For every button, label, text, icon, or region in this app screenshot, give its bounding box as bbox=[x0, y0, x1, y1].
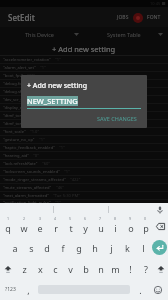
button[interactable]: Symbols bbox=[153, 258, 168, 279]
staticText: "23" bbox=[27, 73, 36, 79]
staticText: n bbox=[98, 263, 104, 275]
button[interactable]: a bbox=[7, 237, 23, 258]
button[interactable]: h bbox=[87, 237, 103, 258]
button[interactable]: 2 bbox=[16, 216, 32, 237]
staticText: m bbox=[111, 263, 120, 275]
staticText: "alarm_alert_set" bbox=[3, 65, 36, 71]
button[interactable]: n bbox=[93, 258, 108, 279]
button[interactable]: This Device bbox=[0, 27, 84, 42]
button[interactable]: j bbox=[103, 237, 119, 258]
staticText: "1" bbox=[64, 169, 70, 175]
button[interactable]: 5 bbox=[63, 216, 78, 237]
staticText: "1" bbox=[55, 57, 61, 63]
button[interactable]: 1 bbox=[0, 216, 16, 237]
button[interactable]: NEW_SETTING bbox=[27, 96, 78, 106]
button[interactable]: ?123 bbox=[0, 279, 20, 300]
button[interactable]: "accelerometer_rotation" bbox=[0, 56, 168, 63]
button[interactable]: "alarm_alert_set" bbox=[0, 64, 168, 71]
button[interactable]: "gesture_no_op" bbox=[0, 136, 168, 143]
staticText: + Add new setting bbox=[27, 81, 88, 91]
staticText: "debug.sf.tocontext.animation" bbox=[3, 89, 63, 95]
button[interactable]: Enter bbox=[152, 240, 167, 255]
button[interactable]: , bbox=[20, 279, 36, 300]
button[interactable]: c bbox=[48, 258, 63, 279]
button[interactable]: "lockscreen_sounds_enabled" bbox=[0, 168, 168, 175]
button[interactable]: Record bbox=[133, 13, 143, 23]
button[interactable]: "mute_streams_affected" bbox=[0, 184, 168, 191]
staticText: ! bbox=[129, 263, 132, 275]
staticText: "dtmf_tone" bbox=[3, 113, 26, 119]
button[interactable]: ? bbox=[138, 258, 153, 279]
staticText: t bbox=[69, 222, 73, 234]
staticText: "1" bbox=[55, 200, 61, 203]
button[interactable]: d bbox=[39, 237, 55, 258]
button[interactable]: "font_scale" bbox=[0, 128, 168, 135]
button[interactable]: 0 bbox=[138, 216, 153, 237]
button[interactable]: "dtmf_tone" bbox=[0, 112, 168, 119]
button[interactable]: Backspace bbox=[153, 216, 168, 237]
staticText: ?123 bbox=[5, 286, 16, 293]
staticText: j bbox=[110, 242, 113, 254]
button[interactable]: + Add new setting bbox=[0, 42, 168, 55]
staticText: "60" bbox=[42, 161, 51, 167]
button[interactable]: 3 bbox=[32, 216, 48, 237]
button[interactable]: Emoji bbox=[148, 279, 168, 300]
button[interactable]: System Table bbox=[84, 27, 168, 42]
button[interactable]: b bbox=[78, 258, 93, 279]
button[interactable]: z bbox=[16, 258, 32, 279]
button[interactable]: "boot_fps" bbox=[0, 72, 168, 79]
button[interactable]: "haptic_feedback_enabled" bbox=[0, 144, 168, 151]
staticText: z bbox=[22, 263, 27, 275]
button[interactable]: "dtmf_tone_type" bbox=[0, 120, 168, 127]
button[interactable]: Voice input bbox=[152, 203, 168, 216]
button[interactable]: "mode_ringer_streams_affected" bbox=[0, 176, 168, 183]
staticText: "lock.refreshRate" bbox=[3, 161, 38, 167]
button[interactable]: l bbox=[135, 237, 151, 258]
button[interactable]: "notification_light_pulse" bbox=[0, 200, 168, 203]
button[interactable]: 7 bbox=[93, 216, 108, 237]
staticText: "dev_scr_timeout" bbox=[3, 97, 38, 103]
button[interactable]: "debug.sf.tocontext.animation" bbox=[0, 88, 168, 95]
button[interactable]: s bbox=[23, 237, 39, 258]
button[interactable]: 4 bbox=[48, 216, 63, 237]
staticText: a bbox=[12, 242, 18, 254]
staticText: y bbox=[83, 222, 88, 234]
button[interactable]: g bbox=[71, 237, 87, 258]
button[interactable]: "dev_scr_timeout" bbox=[0, 96, 168, 103]
staticText: "vulkan" bbox=[52, 81, 68, 87]
button[interactable]: 8 bbox=[108, 216, 123, 237]
button[interactable]: f bbox=[55, 237, 71, 258]
button[interactable]: v bbox=[63, 258, 78, 279]
staticText: 6 bbox=[84, 216, 87, 221]
button[interactable]: FONT bbox=[145, 12, 163, 23]
staticText: "notification_light_pulse" bbox=[3, 200, 51, 203]
button[interactable]: "debug.force.renderer" bbox=[0, 80, 168, 87]
staticText: 10:45 bbox=[150, 1, 161, 6]
button[interactable]: x bbox=[32, 258, 48, 279]
button[interactable]: ! bbox=[123, 258, 138, 279]
button[interactable]: JOBS bbox=[115, 12, 131, 23]
staticText: JOBS bbox=[117, 14, 129, 21]
button[interactable]: "lock.refreshRate" bbox=[0, 160, 168, 167]
button[interactable]: k bbox=[119, 237, 135, 258]
button[interactable]: . bbox=[132, 279, 148, 300]
staticText: ? bbox=[144, 263, 148, 275]
button[interactable]: SAVE CHANGES bbox=[93, 113, 141, 124]
staticText: d bbox=[44, 242, 50, 254]
button[interactable]: "display_color_mode" bbox=[0, 104, 168, 111]
staticText: "Tue 5:30 PM" bbox=[53, 193, 80, 199]
button[interactable]: Shift bbox=[0, 258, 16, 279]
button[interactable]: 6 bbox=[78, 216, 93, 237]
staticText: 4 bbox=[54, 216, 57, 221]
button[interactable]: "next_alarm_formatted" bbox=[0, 192, 168, 199]
button[interactable]: 9 bbox=[123, 216, 138, 237]
staticText: p bbox=[143, 222, 149, 234]
button[interactable]: "hearing_aid" bbox=[0, 152, 168, 159]
button[interactable]: m bbox=[108, 258, 123, 279]
staticText: "debug.force.renderer" bbox=[3, 81, 48, 87]
